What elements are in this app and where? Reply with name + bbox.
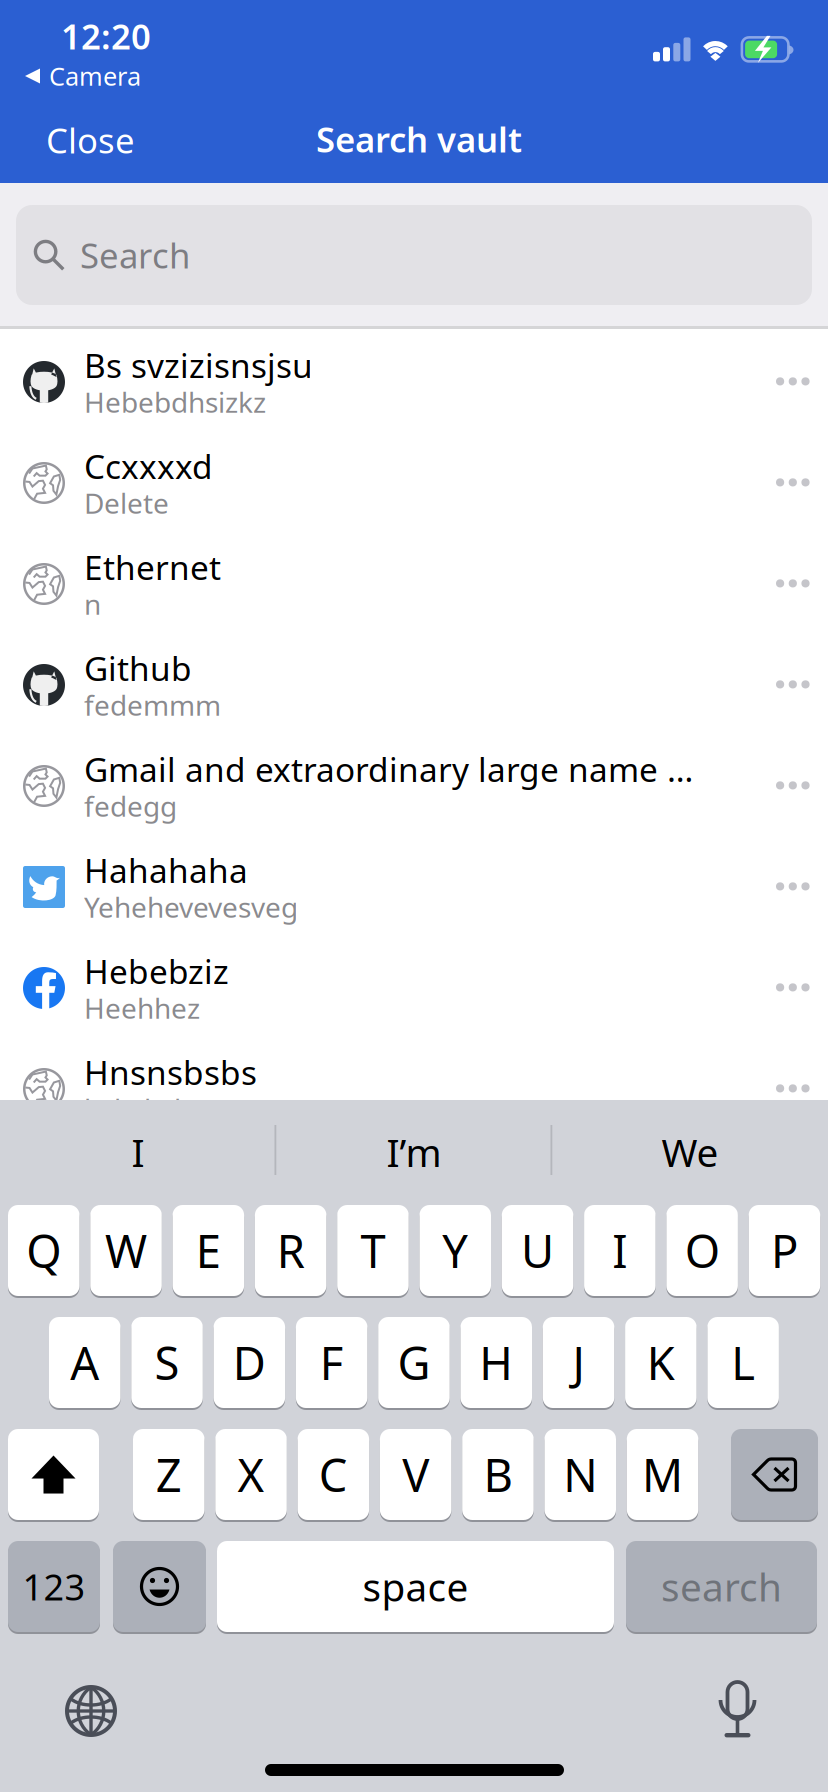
button[interactable]: Dictation <box>718 1682 756 1738</box>
button[interactable]: L <box>707 1317 779 1408</box>
button[interactable]: Github <box>0 632 828 733</box>
staticText: Z <box>156 1444 182 1505</box>
button[interactable]: R <box>255 1205 326 1296</box>
button[interactable]: N <box>544 1429 616 1520</box>
staticText: J <box>572 1332 584 1393</box>
staticText: Bs svzizisnsjsu <box>84 343 313 387</box>
button[interactable]: Close <box>46 102 176 178</box>
staticText: Search vault <box>316 116 522 162</box>
button[interactable]: Hebebziz <box>0 935 828 1036</box>
staticText: P <box>771 1220 798 1281</box>
button[interactable]: X <box>215 1429 287 1520</box>
staticText: Search <box>80 232 190 278</box>
staticText: X <box>238 1444 265 1505</box>
button[interactable]: P <box>749 1205 820 1296</box>
button[interactable]: Z <box>133 1429 204 1520</box>
staticText: G <box>397 1332 430 1393</box>
button[interactable]: V <box>380 1429 451 1520</box>
staticText: V <box>402 1444 429 1505</box>
staticText: 12:20 <box>61 13 151 59</box>
button[interactable]: U <box>502 1205 573 1296</box>
button[interactable]: search <box>626 1541 817 1632</box>
button[interactable]: 123 <box>8 1541 100 1632</box>
button[interactable]: E <box>173 1205 244 1296</box>
staticText: H <box>479 1332 513 1393</box>
staticText: Ccxxxxd <box>84 444 213 488</box>
staticText: Yehehevevesveg <box>84 888 298 926</box>
staticText: C <box>319 1444 348 1505</box>
staticText: We <box>661 1126 718 1178</box>
button[interactable]: B <box>462 1429 534 1520</box>
staticText: Camera <box>49 59 141 93</box>
button[interactable]: We <box>552 1100 828 1204</box>
button[interactable]: I <box>584 1205 656 1296</box>
button[interactable]: Hahahaha <box>0 834 828 935</box>
staticText: I <box>612 1220 627 1281</box>
button[interactable]: G <box>378 1317 450 1408</box>
staticText: Close <box>46 117 135 163</box>
staticText: F <box>320 1332 344 1393</box>
button[interactable]: Q <box>8 1205 79 1296</box>
staticText: n <box>84 585 101 623</box>
button[interactable]: Ethernet <box>0 531 828 632</box>
staticText: K <box>647 1332 675 1393</box>
staticText: M <box>642 1444 683 1505</box>
button[interactable]: Delete <box>731 1429 818 1520</box>
button[interactable]: C <box>298 1429 369 1520</box>
button[interactable]: S <box>131 1317 203 1408</box>
button[interactable]: K <box>625 1317 697 1408</box>
button[interactable]: Search <box>16 205 812 305</box>
staticText: O <box>685 1220 720 1281</box>
staticText: bsbsbsb <box>84 1090 191 1128</box>
staticText: N <box>563 1444 597 1505</box>
staticText: Hahahaha <box>84 848 248 892</box>
button[interactable]: Bs svzizisnsjsu <box>0 329 828 430</box>
button[interactable]: Shift <box>8 1429 99 1520</box>
staticText: R <box>277 1220 305 1281</box>
staticText: Github <box>84 646 192 690</box>
staticText: search <box>661 1561 782 1612</box>
staticText: Delete <box>84 484 169 522</box>
button[interactable]: F <box>296 1317 367 1408</box>
button[interactable]: W <box>90 1205 162 1296</box>
staticText: fedemmm <box>84 686 221 724</box>
button[interactable]: Ccxxxxd <box>0 430 828 531</box>
staticText: Hnsnsbsbs <box>84 1050 257 1094</box>
staticText: E <box>196 1220 221 1281</box>
button[interactable]: T <box>337 1205 409 1296</box>
button[interactable]: I <box>0 1100 276 1204</box>
staticText: Y <box>442 1220 468 1281</box>
staticText: W <box>105 1220 147 1281</box>
staticText: fedegg <box>84 787 177 825</box>
staticText: space <box>362 1561 468 1612</box>
staticText: I’m <box>386 1126 441 1178</box>
staticText: Q <box>26 1220 61 1281</box>
button[interactable]: space <box>217 1541 614 1632</box>
staticText: A <box>70 1332 99 1393</box>
staticText: S <box>155 1332 180 1393</box>
staticText: Gmail and extraordinary large name be… <box>84 747 704 791</box>
button[interactable]: Emoji <box>113 1541 206 1632</box>
staticText: B <box>483 1444 512 1505</box>
staticText: D <box>233 1332 266 1393</box>
button[interactable]: A <box>49 1317 120 1408</box>
button[interactable]: M <box>627 1429 698 1520</box>
staticText: U <box>521 1220 554 1281</box>
button[interactable]: Y <box>419 1205 491 1296</box>
button[interactable]: Hnsnsbsbs <box>0 1036 828 1137</box>
button[interactable]: H <box>460 1317 532 1408</box>
staticText: Hebebziz <box>84 949 229 993</box>
staticText: L <box>731 1332 755 1393</box>
staticText: I <box>131 1126 144 1178</box>
staticText: Ethernet <box>84 545 221 589</box>
staticText: 123 <box>22 1563 85 1610</box>
button[interactable]: Gmail and extraordinary large name be… <box>0 733 828 834</box>
staticText: Heehhez <box>84 989 200 1027</box>
button[interactable]: D <box>214 1317 285 1408</box>
staticText: Hebebdhsizkz <box>84 383 266 421</box>
button[interactable]: Next keyboard <box>65 1685 117 1737</box>
staticText: T <box>360 1220 385 1281</box>
button[interactable]: O <box>666 1205 738 1296</box>
button[interactable]: J <box>543 1317 614 1408</box>
button[interactable]: I’m <box>276 1100 552 1204</box>
